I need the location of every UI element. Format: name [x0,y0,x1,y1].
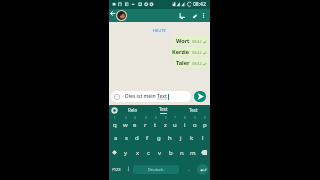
button[interactable]: c [143,145,154,160]
staticText: t [154,121,157,129]
staticText: z [164,121,167,129]
button[interactable]: d [131,130,142,145]
staticText: 2 [125,116,127,120]
button[interactable]: 5 [150,115,160,130]
staticText: o [193,121,197,129]
button[interactable]: 7 [170,115,180,130]
button[interactable]: HEUTE [150,27,169,34]
staticText: 08:42 [192,39,202,44]
staticText: 08:42 [192,61,202,66]
button[interactable]: k [186,130,197,145]
staticText: s [125,134,128,142]
button[interactable]: n [176,145,187,160]
staticText: . [188,165,190,173]
staticText: Test [159,106,168,112]
button[interactable]: 0 [200,115,210,130]
button[interactable]: b [165,145,176,160]
button[interactable]: f [142,130,153,145]
button[interactable]: 3 [130,115,140,130]
staticText: 08:42 [193,1,206,8]
button[interactable]: y [120,145,132,160]
button[interactable]: g [153,130,164,145]
button[interactable]: Period [183,160,194,178]
staticText: w [123,121,128,129]
staticText: Wort [176,37,190,44]
staticText: 1 [114,116,116,120]
button[interactable]: Kerzie [170,47,208,56]
staticText: n [180,149,184,157]
button[interactable]: 8 [180,115,190,130]
button[interactable]: · [111,91,191,102]
staticText: p [203,121,207,129]
staticText: Deutsch [148,167,164,172]
staticText: c [147,149,150,157]
staticText: Kerzie [172,48,190,55]
staticText: j [180,134,182,142]
staticText: l [202,134,204,142]
staticText: x [136,149,140,157]
button[interactable]: Enter [194,160,210,178]
button[interactable]: More options [199,11,208,20]
button[interactable]: Test [148,105,178,115]
button[interactable]: Send [194,91,206,102]
staticText: k [190,134,194,142]
staticText: ?123 [112,167,121,172]
button[interactable]: m [187,145,198,160]
button[interactable]: Backspace [198,145,210,160]
staticText: Test [189,107,198,113]
button[interactable]: Contact photo [116,10,127,21]
staticText: 5 [155,116,157,120]
staticText: 9 [194,116,196,120]
staticText: Taler [176,59,190,66]
button[interactable]: Attach [188,10,199,21]
staticText: 7 [174,116,176,120]
button[interactable]: 6 [160,115,170,130]
staticText: 08:42 [192,50,202,55]
staticText: Text [157,93,167,100]
staticText: d [135,134,139,142]
button[interactable]: Keyboard settings [111,107,118,114]
button[interactable]: 1 [109,115,120,130]
staticText: v [158,149,162,157]
button[interactable]: Wort [174,36,208,45]
staticText: HEUTE [153,28,166,33]
staticText: f [146,134,149,142]
staticText: q [113,121,117,129]
staticText: · [122,93,124,100]
button[interactable]: l [197,130,208,145]
staticText: b [169,149,173,157]
button[interactable]: Taler [174,58,208,67]
button[interactable]: h [164,130,175,145]
button[interactable]: a [111,130,121,145]
button[interactable]: Shift [109,145,120,160]
staticText: g [157,134,161,142]
button[interactable]: v [154,145,165,160]
button[interactable]: 4 [140,115,150,130]
button[interactable]: 9 [190,115,200,130]
staticText: r [144,121,147,129]
staticText: Dies ist mein [125,93,157,100]
button[interactable]: Test [178,105,208,115]
button[interactable]: 2 [120,115,130,130]
button[interactable]: Comma and voice input [123,160,133,178]
staticText: a [114,134,118,142]
staticText: Rein [128,107,138,113]
button[interactable]: s [121,130,131,145]
button[interactable]: Rein [118,105,148,115]
staticText: 6 [165,116,167,120]
staticText: 3 [134,116,136,120]
button[interactable]: Back [109,10,116,17]
staticText: m [190,149,196,157]
staticText: u [173,121,177,129]
button[interactable]: Video call [176,10,187,21]
staticText: i [184,121,186,129]
staticText: y [124,149,128,157]
staticText: 0 [204,116,206,120]
staticText: e [133,121,137,129]
button[interactable]: ?123 [109,160,123,178]
button[interactable]: Deutsch [133,165,179,174]
button[interactable]: j [175,130,186,145]
staticText: 8 [184,116,186,120]
button[interactable]: x [132,145,143,160]
staticText: h [168,134,172,142]
